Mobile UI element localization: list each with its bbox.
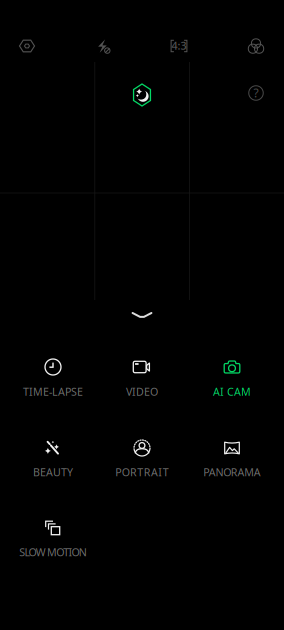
button[interactable]: TIME-LAPSE bbox=[9, 357, 97, 409]
button[interactable]: Help bbox=[241, 78, 271, 108]
staticText: BEAUTY bbox=[33, 465, 73, 479]
button[interactable]: PANORAMA bbox=[188, 438, 276, 490]
staticText: SLOW MOTION bbox=[19, 545, 87, 559]
button[interactable]: Flash off bbox=[84, 31, 122, 61]
button[interactable]: Aspect ratio 4 to 3 bbox=[160, 31, 198, 61]
button[interactable]: Filters bbox=[8, 31, 46, 61]
button[interactable]: BEAUTY bbox=[9, 438, 97, 490]
staticText: PORTRAIT bbox=[115, 465, 169, 479]
staticText: ? bbox=[253, 85, 258, 101]
button[interactable]: SLOW MOTION bbox=[9, 518, 97, 570]
staticText: 4:3 bbox=[171, 39, 186, 53]
button[interactable]: VIDEO bbox=[98, 357, 186, 409]
button[interactable]: Collapse mode list bbox=[110, 302, 174, 328]
staticText: PANORAMA bbox=[203, 465, 261, 479]
staticText: AI CAM bbox=[213, 384, 251, 399]
button[interactable]: PORTRAIT bbox=[98, 438, 186, 490]
button[interactable]: Colour filters bbox=[237, 31, 275, 61]
button[interactable]: AI CAM bbox=[188, 357, 276, 409]
button[interactable]: Night mode bbox=[125, 78, 159, 112]
staticText: TIME-LAPSE bbox=[23, 384, 83, 399]
staticText: VIDEO bbox=[126, 384, 158, 399]
